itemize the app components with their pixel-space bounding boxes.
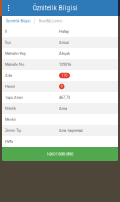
staticText: Akçalı <box>59 51 70 56</box>
button[interactable]: Favorilere ekle <box>2 147 118 161</box>
staticText: Mahalle/Köy <box>5 51 26 56</box>
staticText: Ada <box>5 73 12 78</box>
staticText: 9 <box>61 84 63 89</box>
staticText: Mahalle No <box>5 62 24 67</box>
staticText: İlçe <box>5 40 11 45</box>
staticText: Ana Taşınmaz <box>59 128 83 133</box>
button[interactable]: Menu <box>2 0 15 16</box>
staticText: Tapu Alanı <box>5 95 23 100</box>
staticText: Bina/Bğ.Listesi <box>39 19 63 23</box>
staticText: Nitelik <box>5 106 16 111</box>
staticText: 129316 <box>59 62 71 67</box>
button[interactable]: Bina/Bğ.Listesi <box>35 16 67 26</box>
staticText: Öznitelik Bilgisi <box>32 4 77 12</box>
staticText: Parsel <box>5 84 15 89</box>
staticText: Hatay <box>59 29 69 34</box>
staticText: Favorilere ekle <box>47 151 73 157</box>
staticText: Arsuz <box>59 40 69 45</box>
staticText: İl <box>5 29 7 34</box>
staticText: Arsa <box>59 106 67 111</box>
button[interactable]: Öznitelik Bilgisi <box>2 16 34 26</box>
staticText: Zemin Tip <box>5 128 21 133</box>
staticText: 170 <box>61 73 67 78</box>
staticText: Mevkii <box>5 117 16 122</box>
staticText: Öznitelik Bilgisi <box>5 19 30 23</box>
staticText: Pafta <box>5 139 13 144</box>
staticText: 467,73 <box>59 95 70 100</box>
